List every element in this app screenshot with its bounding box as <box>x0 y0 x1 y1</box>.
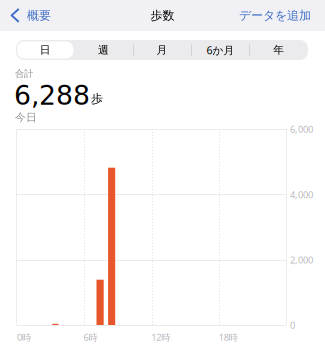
staticText: 日 <box>40 43 51 56</box>
button[interactable]: 6か月 <box>191 40 250 60</box>
staticText: 6,288 <box>14 80 90 111</box>
staticText: 18時 <box>219 331 238 343</box>
staticText: 月 <box>156 43 167 56</box>
staticText: 6時 <box>84 331 98 343</box>
staticText: 歩 <box>91 91 103 106</box>
staticText: 6,000 <box>290 123 313 135</box>
staticText: 概要 <box>27 8 51 23</box>
staticText: 2,000 <box>290 254 313 266</box>
staticText: 12時 <box>151 331 170 343</box>
staticText: 歩数 <box>150 8 174 23</box>
staticText: データを追加 <box>239 8 311 23</box>
staticText: 今日 <box>15 111 37 124</box>
staticText: 年 <box>273 43 284 56</box>
button[interactable]: 日 <box>16 40 74 60</box>
staticText: 合計 <box>15 68 33 79</box>
staticText: 週 <box>98 43 109 56</box>
staticText: 6か月 <box>206 43 234 57</box>
button[interactable]: 年 <box>250 40 308 60</box>
staticText: 0 <box>290 319 295 331</box>
button[interactable]: データを追加 <box>225 0 325 31</box>
staticText: 4,000 <box>290 188 313 201</box>
staticText: 0時 <box>17 331 31 343</box>
button[interactable]: 週 <box>74 40 133 60</box>
button[interactable]: 概要 <box>0 0 57 31</box>
button[interactable]: 月 <box>133 40 191 60</box>
